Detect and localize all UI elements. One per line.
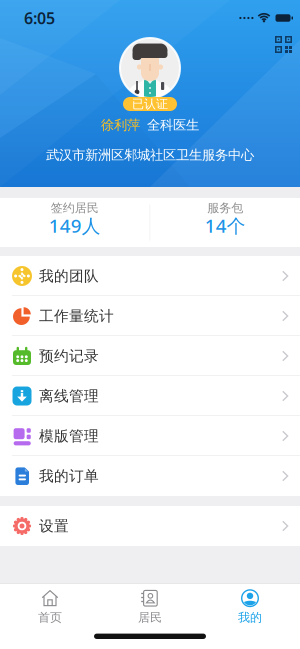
staticText: 全科医生 (147, 117, 199, 133)
button[interactable]: 设置 (0, 506, 300, 546)
button[interactable]: 已认证 (123, 97, 177, 111)
button[interactable]: 工作量统计 (0, 296, 300, 336)
staticText: 工作量统计 (39, 307, 114, 325)
button[interactable]: 签约居民 (0, 198, 149, 247)
button[interactable]: 我的订单 (0, 456, 300, 496)
staticText: 预约记录 (39, 347, 99, 365)
button[interactable]: 离线管理 (0, 376, 300, 416)
button[interactable]: 模版管理 (0, 416, 300, 456)
staticText: 6:05 (24, 7, 55, 29)
staticText: 徐利萍 (101, 117, 140, 133)
staticText: 签约居民 (51, 201, 99, 215)
staticText: 设置 (39, 517, 69, 535)
staticText: 首页 (38, 610, 62, 625)
button[interactable] (275, 36, 292, 53)
button[interactable]: 预约记录 (0, 336, 300, 376)
staticText: 我的团队 (39, 267, 99, 285)
staticText: 我的订单 (39, 467, 99, 485)
button[interactable]: 我的团队 (0, 256, 300, 296)
staticText: 武汉市新洲区邾城社区卫生服务中心 (46, 147, 254, 163)
staticText: 已认证 (132, 97, 168, 111)
button[interactable]: 我的 (200, 589, 300, 625)
staticText: 我的 (238, 610, 262, 625)
button[interactable]: 居民 (100, 589, 200, 625)
staticText: 149人 (49, 213, 101, 238)
button[interactable]: 首页 (0, 589, 100, 625)
button[interactable] (120, 38, 180, 98)
button[interactable]: 服务包 (150, 198, 300, 247)
staticText: 模版管理 (39, 427, 99, 445)
staticText: 离线管理 (39, 387, 99, 405)
staticText: 服务包 (207, 201, 243, 215)
staticText: 居民 (138, 610, 162, 625)
staticText: 14个 (205, 213, 246, 238)
